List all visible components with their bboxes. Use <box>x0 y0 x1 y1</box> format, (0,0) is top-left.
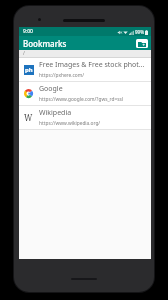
staticText: https://www.google.com/?gws_rd=ssl <box>39 96 123 103</box>
button[interactable]: ph <box>19 58 151 82</box>
staticText: 9:00 <box>23 28 33 35</box>
staticText: Bookmarks <box>23 38 67 49</box>
button[interactable]: W <box>19 106 151 130</box>
staticText: Free Images & Free stock photos – Px… <box>39 60 147 70</box>
staticText: 99% <box>135 29 144 35</box>
staticText: https://pxhere.com/ <box>39 72 84 79</box>
staticText: ph <box>25 66 33 74</box>
button[interactable]: Add bookmark <box>136 39 148 48</box>
staticText: W <box>24 112 33 123</box>
button[interactable]: Google <box>19 82 151 106</box>
staticText: / <box>23 50 25 57</box>
staticText: Wikipedia <box>39 108 72 118</box>
staticText: https://www.wikipedia.org/ <box>39 120 101 127</box>
staticText: Google <box>39 84 63 94</box>
